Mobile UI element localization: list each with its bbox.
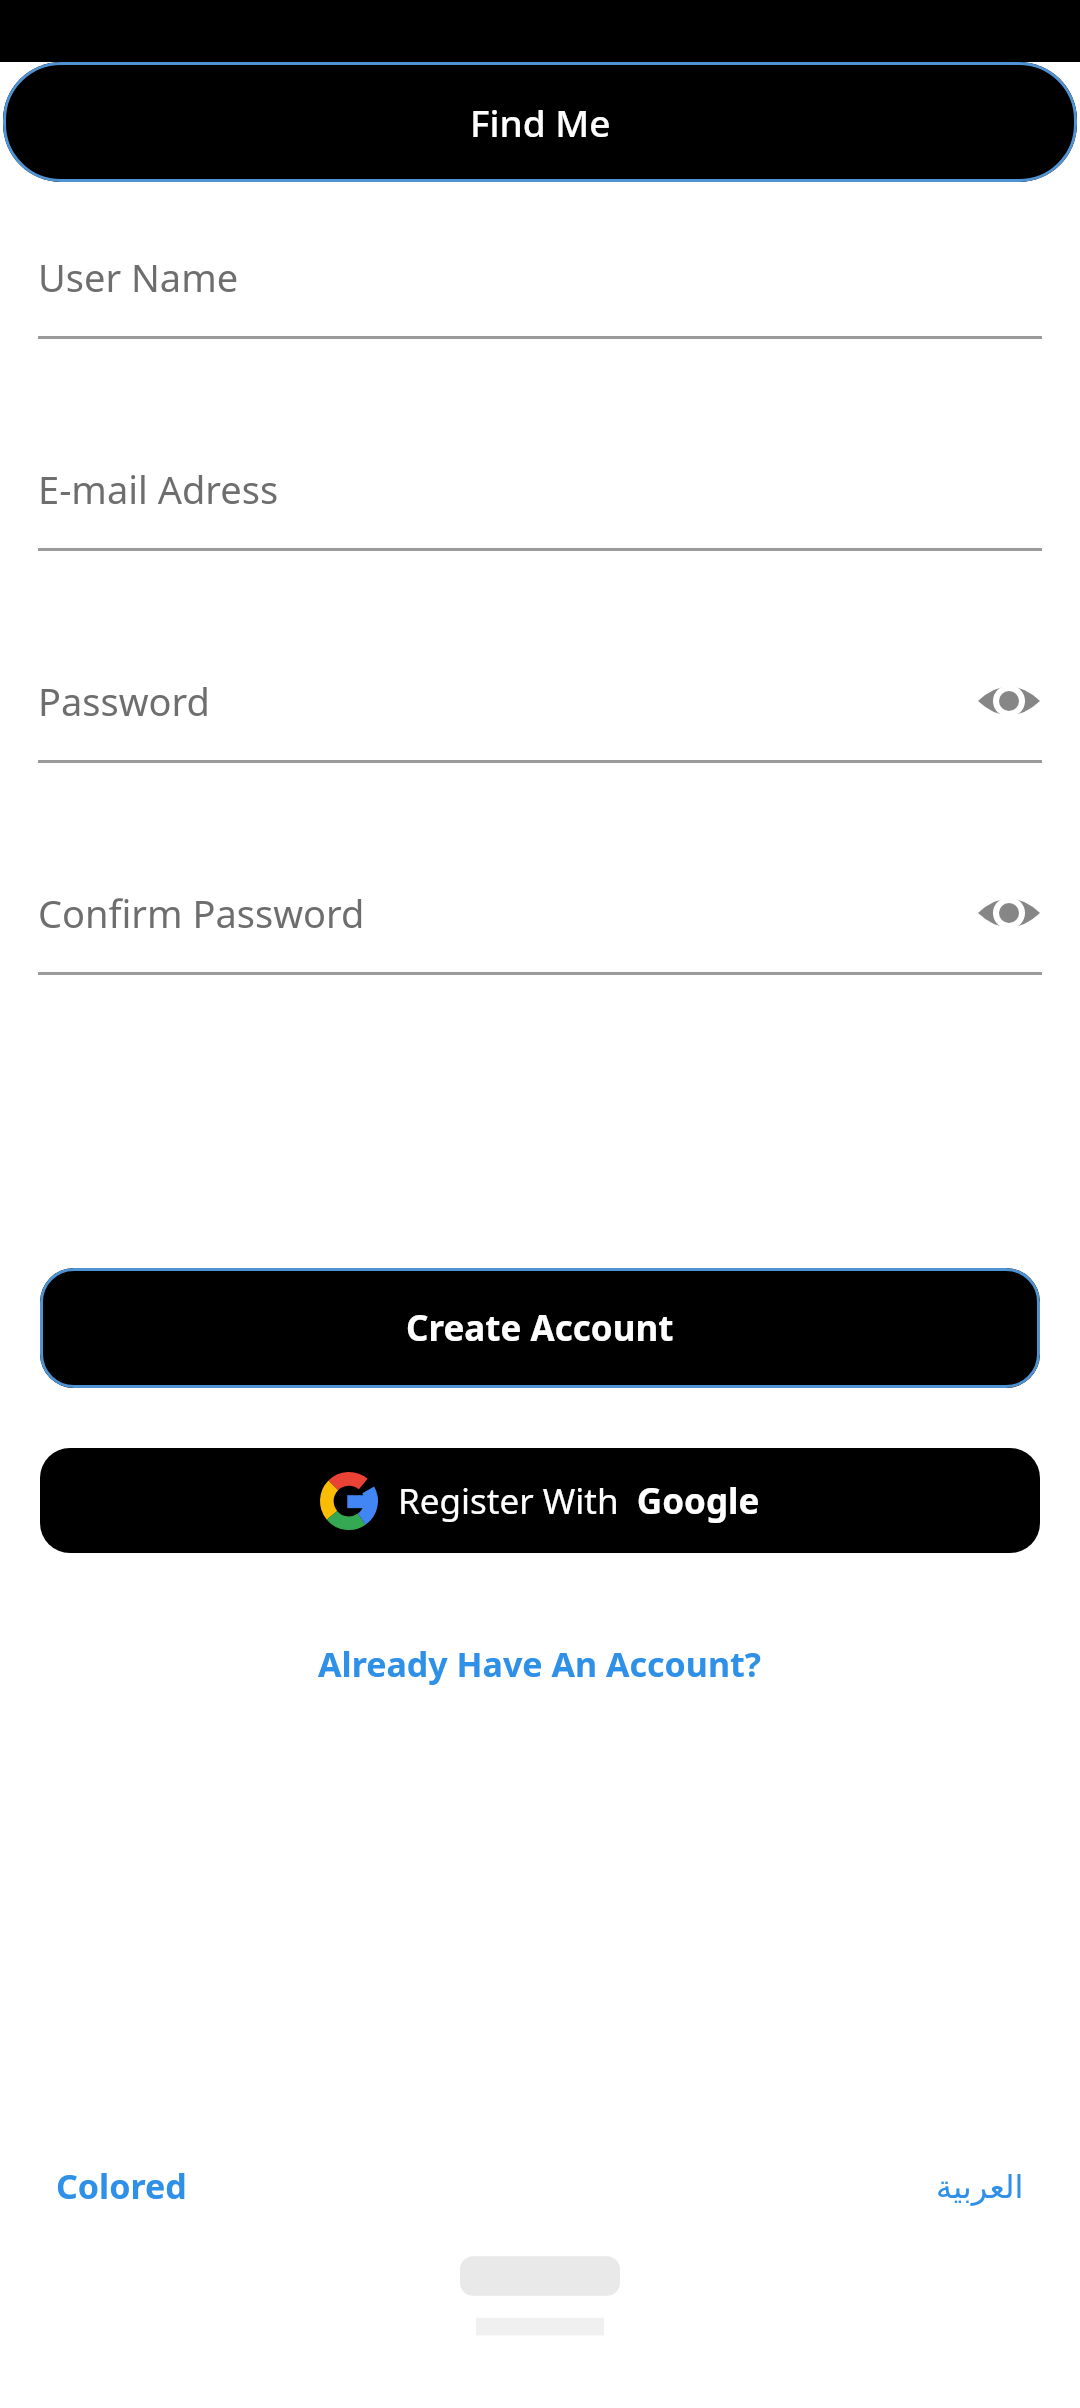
staticText: Already Have An Account?	[318, 1641, 762, 1687]
staticText: E-mail Adress	[38, 463, 279, 515]
button[interactable]: E-mail Adress	[38, 430, 1042, 642]
staticText: Confirm Password	[38, 887, 365, 939]
button[interactable]: Show password	[976, 668, 1042, 734]
button[interactable]: Colored	[56, 2155, 187, 2217]
staticText: Password	[38, 675, 210, 727]
staticText: العربية	[936, 2168, 1024, 2205]
button[interactable]: Register With Google	[40, 1448, 1040, 1553]
button[interactable]: Show password	[976, 880, 1042, 946]
button[interactable]: Confirm Password	[38, 854, 1042, 1066]
button[interactable]: User Name	[38, 218, 1042, 430]
button[interactable]: العربية	[936, 2160, 1024, 2213]
staticText: Create Account	[406, 1304, 674, 1352]
staticText: User Name	[38, 251, 239, 303]
button[interactable]: Find Me	[3, 62, 1077, 182]
button[interactable]: Password	[38, 642, 1042, 854]
button[interactable]: Already Have An Account?	[298, 1633, 782, 1695]
button[interactable]: Create Account	[40, 1268, 1040, 1388]
staticText: Colored	[56, 2163, 187, 2209]
staticText: Find Me	[470, 97, 611, 147]
staticText: Register With Google	[398, 1477, 760, 1525]
